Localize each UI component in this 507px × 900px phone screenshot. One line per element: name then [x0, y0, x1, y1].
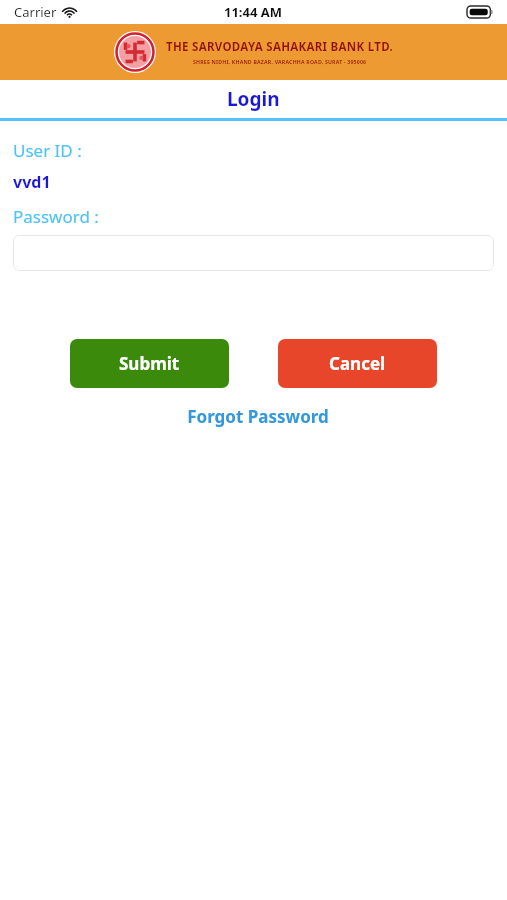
staticText: Password : [13, 205, 99, 228]
button[interactable]: Submit [70, 339, 229, 388]
button[interactable]: Cancel [278, 339, 437, 388]
staticText: Forgot Password [187, 405, 329, 428]
staticText: Login [227, 86, 280, 112]
staticText: Cancel [329, 352, 386, 375]
button[interactable] [13, 235, 494, 271]
staticText: 11:44 AM [224, 3, 283, 21]
staticText: SHREE NIDHI, KHAND BAZAR, VARACHHA ROAD,… [193, 58, 367, 65]
staticText: THE SARVODAYA SAHAKARI BANK LTD. [166, 39, 393, 55]
button[interactable]: Forgot Password [181, 402, 335, 431]
staticText: Carrier [14, 3, 57, 21]
staticText: User ID : [13, 139, 82, 162]
staticText: Submit [119, 352, 180, 375]
staticText: vvd1 [13, 171, 51, 193]
